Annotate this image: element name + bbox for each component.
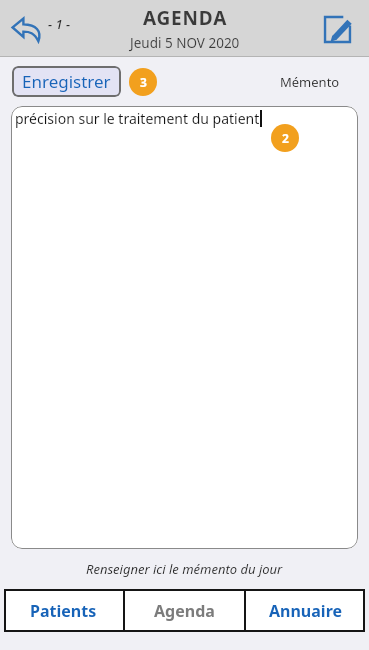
staticText: 2 — [282, 130, 289, 146]
button[interactable]: Enregistrer — [12, 66, 121, 97]
staticText: Mémento — [280, 73, 340, 91]
button[interactable]: Agenda — [125, 589, 244, 632]
staticText: 3 — [140, 74, 147, 90]
button[interactable]: Patients — [4, 589, 123, 632]
button[interactable]: Retour — [6, 8, 48, 50]
staticText: Renseigner ici le mémento du jour — [86, 560, 283, 578]
staticText: précision sur le traitement du patient — [15, 109, 260, 128]
staticText: Patients — [30, 600, 97, 622]
button[interactable]: Annuaire — [246, 589, 365, 632]
staticText: - 1 - — [48, 15, 71, 33]
staticText: Agenda — [154, 600, 215, 622]
staticText: Jeudi 5 NOV 2020 — [130, 34, 240, 52]
staticText: Annuaire — [269, 600, 343, 622]
button[interactable]: précision sur le traitement du patient — [11, 106, 358, 549]
button[interactable]: Modifier — [319, 11, 355, 47]
staticText: AGENDA — [143, 5, 228, 31]
staticText: Enregistrer — [22, 70, 111, 93]
